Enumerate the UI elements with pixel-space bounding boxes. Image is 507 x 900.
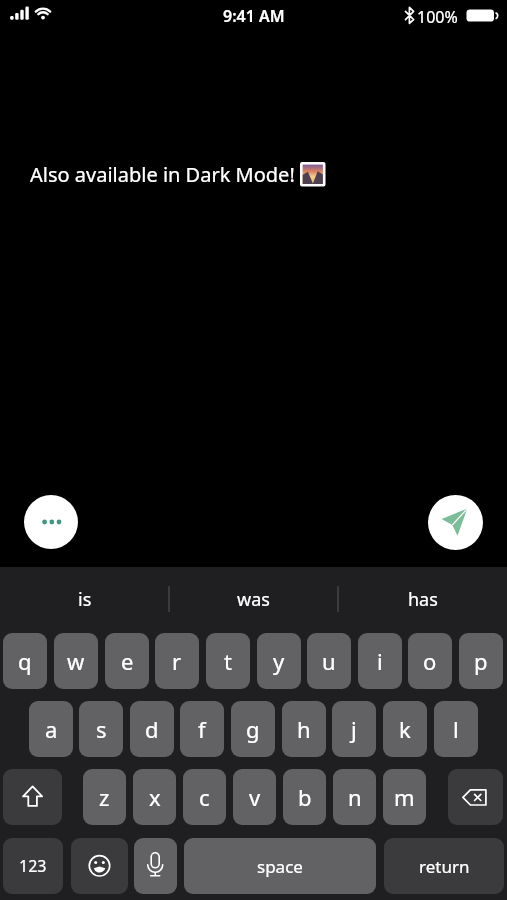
- button[interactable]: was: [169, 584, 338, 614]
- button[interactable]: v: [233, 769, 276, 825]
- button[interactable]: t: [206, 633, 250, 689]
- staticText: s: [96, 714, 107, 744]
- button[interactable]: [24, 495, 78, 549]
- staticText: y: [273, 646, 285, 676]
- staticText: i: [377, 646, 383, 676]
- button[interactable]: s: [79, 701, 123, 757]
- staticText: r: [172, 646, 182, 676]
- staticText: x: [149, 782, 161, 812]
- button[interactable]: b: [283, 769, 326, 825]
- staticText: v: [249, 782, 261, 812]
- button[interactable]: n: [333, 769, 376, 825]
- staticText: 123: [19, 855, 47, 877]
- staticText: l: [453, 714, 459, 744]
- button[interactable]: [134, 838, 177, 894]
- button[interactable]: z: [83, 769, 126, 825]
- staticText: space: [257, 855, 303, 878]
- button[interactable]: [448, 769, 503, 825]
- staticText: d: [145, 714, 159, 744]
- button[interactable]: [428, 495, 483, 550]
- staticText: h: [297, 714, 311, 744]
- staticText: m: [394, 782, 415, 812]
- button[interactable]: h: [282, 701, 326, 757]
- staticText: w: [67, 646, 85, 676]
- staticText: n: [348, 782, 362, 812]
- staticText: Also available in Dark Mode!: [30, 161, 295, 188]
- button[interactable]: f: [180, 701, 224, 757]
- button[interactable]: p: [459, 633, 503, 689]
- staticText: b: [298, 782, 312, 812]
- button[interactable]: d: [130, 701, 174, 757]
- staticText: was: [237, 587, 270, 612]
- staticText: e: [121, 646, 134, 676]
- staticText: z: [99, 782, 110, 812]
- staticText: 100%: [417, 6, 458, 28]
- staticText: has: [408, 587, 438, 612]
- staticText: a: [45, 714, 58, 744]
- button[interactable]: c: [183, 769, 226, 825]
- staticText: q: [18, 646, 32, 676]
- button[interactable]: r: [155, 633, 199, 689]
- staticText: j: [351, 714, 357, 744]
- button[interactable]: g: [231, 701, 275, 757]
- staticText: p: [474, 646, 488, 676]
- button[interactable]: [71, 838, 128, 894]
- button[interactable]: [3, 769, 62, 825]
- button[interactable]: o: [408, 633, 452, 689]
- staticText: u: [322, 646, 336, 676]
- staticText: o: [423, 646, 437, 676]
- button[interactable]: x: [133, 769, 176, 825]
- button[interactable]: return: [384, 838, 504, 894]
- staticText: c: [199, 782, 210, 812]
- button[interactable]: space: [184, 838, 376, 894]
- button[interactable]: w: [54, 633, 98, 689]
- button[interactable]: y: [257, 633, 301, 689]
- staticText: 9:41 AM: [223, 5, 285, 27]
- button[interactable]: j: [332, 701, 376, 757]
- button[interactable]: i: [358, 633, 402, 689]
- staticText: return: [419, 855, 470, 878]
- button[interactable]: a: [29, 701, 73, 757]
- button[interactable]: k: [383, 701, 427, 757]
- button[interactable]: 123: [3, 838, 63, 894]
- staticText: is: [78, 587, 92, 612]
- staticText: g: [246, 714, 260, 744]
- button[interactable]: is: [0, 584, 169, 614]
- button[interactable]: has: [338, 584, 507, 614]
- button[interactable]: e: [105, 633, 149, 689]
- button[interactable]: u: [307, 633, 351, 689]
- staticText: f: [198, 714, 206, 744]
- staticText: k: [399, 714, 411, 744]
- button[interactable]: l: [434, 701, 478, 757]
- staticText: t: [224, 646, 232, 676]
- button[interactable]: m: [383, 769, 426, 825]
- button[interactable]: q: [3, 633, 47, 689]
